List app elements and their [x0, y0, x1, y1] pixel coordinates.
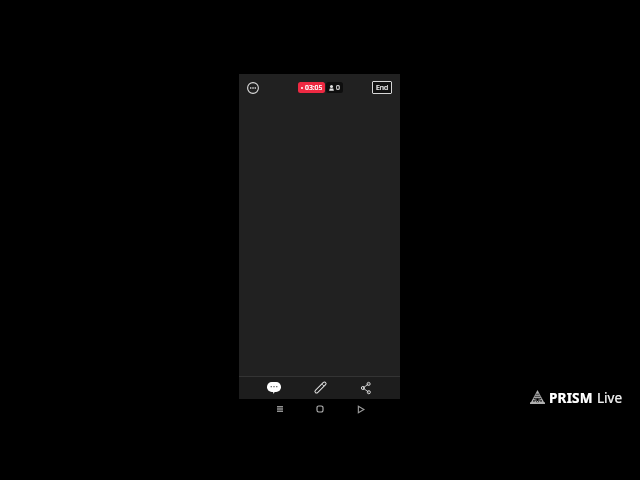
button[interactable]: Chat — [263, 377, 285, 399]
staticText: 03:05 — [305, 83, 323, 92]
button[interactable]: Draw — [309, 376, 331, 398]
button[interactable]: More options — [243, 78, 263, 98]
button[interactable]: 03:05 — [298, 82, 325, 93]
staticText: 0 — [336, 83, 340, 92]
staticText: End — [376, 83, 389, 92]
button[interactable]: Recents — [269, 398, 291, 420]
button[interactable]: 0 — [326, 82, 343, 93]
button[interactable]: Share — [355, 377, 377, 399]
button[interactable]: End — [372, 81, 392, 94]
button[interactable]: Home — [309, 398, 331, 420]
staticText: Live — [597, 389, 623, 407]
staticText: PRISM — [549, 389, 593, 407]
button[interactable]: Back — [350, 398, 372, 420]
